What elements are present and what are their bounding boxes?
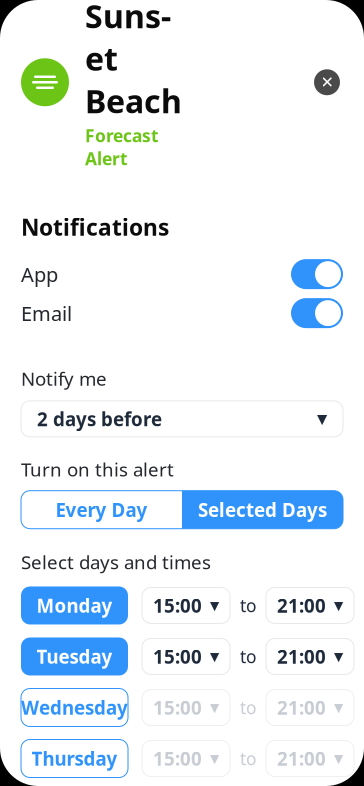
staticText: ✕ (320, 73, 333, 91)
staticText: Thursday (31, 746, 117, 771)
staticText: 21:00 (277, 644, 326, 669)
staticText: ▼ (210, 650, 219, 663)
staticText: 15:00 (153, 593, 202, 618)
button[interactable]: 21:00 (266, 587, 354, 623)
button[interactable]: Thursday (21, 739, 128, 777)
button[interactable]: Wednesday (21, 688, 128, 726)
staticText: to (240, 747, 256, 770)
staticText: 15:00 (153, 695, 202, 720)
staticText: Select days and times (21, 550, 211, 574)
button[interactable]: 15:00 (142, 740, 230, 776)
staticText: Email (21, 300, 72, 326)
staticText: Selected Days (198, 497, 327, 522)
staticText: 15:00 (153, 644, 202, 669)
button[interactable]: 21:00 (266, 689, 354, 725)
button[interactable]: Every Day (21, 491, 182, 529)
staticText: Sunset Beach (85, 0, 182, 122)
staticText: ▼ (334, 701, 343, 714)
staticText: Notifications (21, 212, 169, 242)
staticText: to (240, 594, 256, 617)
staticText: 21:00 (277, 695, 326, 720)
staticText: 2 days before (37, 406, 162, 431)
staticText: Forecast Alert (85, 124, 159, 170)
staticText: 21:00 (277, 746, 326, 771)
staticText: ▼ (210, 701, 219, 714)
staticText: Every Day (55, 497, 147, 522)
button[interactable]: 21:00 (266, 740, 354, 776)
staticText: to (240, 696, 256, 719)
staticText: App (21, 261, 58, 287)
staticText: to (240, 645, 256, 668)
button[interactable]: 15:00 (142, 689, 230, 725)
button[interactable]: 15:00 (142, 638, 230, 674)
staticText: ▼ (334, 650, 343, 663)
button[interactable]: 2 days before (21, 401, 343, 437)
staticText: ▼ (317, 411, 327, 426)
button[interactable]: Monday (21, 586, 128, 624)
staticText: Turn on this alert (21, 457, 174, 482)
button[interactable]: 21:00 (266, 638, 354, 674)
button[interactable]: 15:00 (142, 587, 230, 623)
staticText: 15:00 (153, 746, 202, 771)
staticText: Tuesday (36, 644, 112, 669)
staticText: Notify me (21, 366, 107, 391)
staticText: Monday (36, 593, 112, 618)
button[interactable]: Tuesday (21, 637, 128, 675)
staticText: Wednesday (21, 695, 128, 720)
button[interactable]: Email notifications (291, 298, 343, 328)
staticText: ▼ (210, 599, 219, 612)
staticText: 21:00 (277, 593, 326, 618)
button[interactable]: App notifications (291, 259, 343, 289)
button[interactable]: Close (311, 66, 343, 98)
button[interactable]: Selected Days (182, 491, 343, 529)
staticText: ▼ (334, 752, 343, 765)
staticText: ▼ (334, 599, 343, 612)
staticText: ▼ (210, 752, 219, 765)
